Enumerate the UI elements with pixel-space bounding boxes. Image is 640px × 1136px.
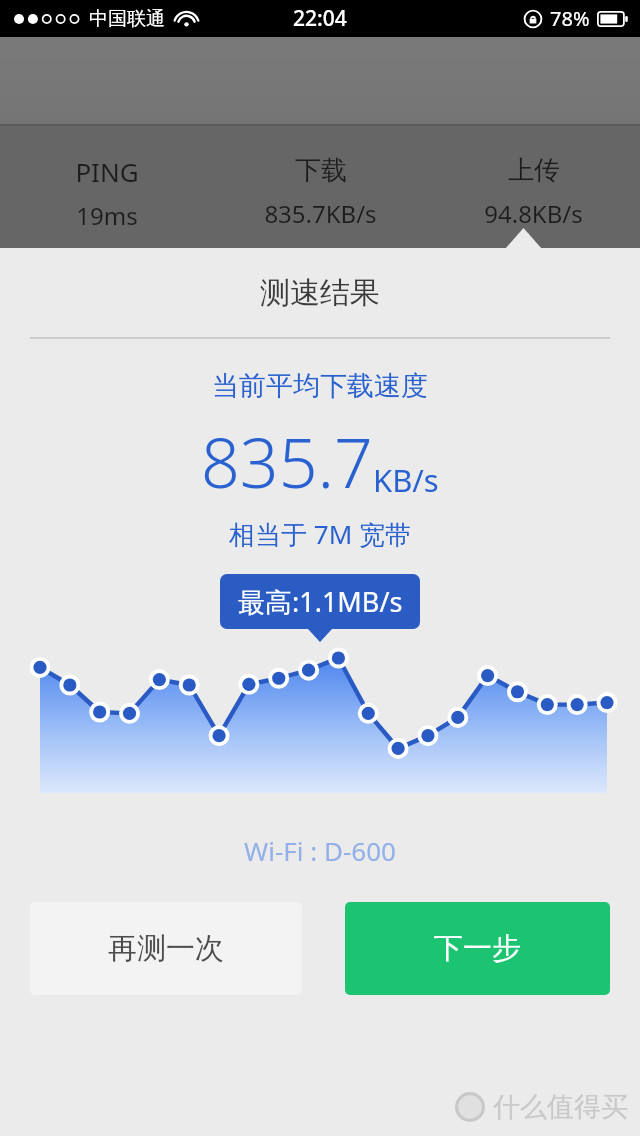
staticText: Wi-Fi : D-600: [0, 833, 640, 868]
staticText: 22:04: [293, 4, 347, 33]
button[interactable]: 下一步: [345, 902, 610, 995]
staticText: 上传: [508, 154, 560, 187]
staticText: 78%: [550, 5, 590, 32]
staticText: 19ms: [76, 199, 138, 232]
staticText: 相当于 7M 宽带: [0, 516, 640, 552]
staticText: 下一步: [434, 930, 521, 967]
staticText: 什么值得买: [493, 1090, 628, 1124]
staticText: KB/s: [373, 459, 439, 501]
staticText: 当前平均下载速度: [0, 369, 640, 403]
staticText: 最高:1.1MB/s: [238, 583, 403, 620]
staticText: 再测一次: [108, 930, 224, 967]
staticText: 94.8KB/s: [484, 197, 583, 230]
staticText: 中国联通: [89, 7, 165, 31]
staticText: 测速结果: [0, 274, 640, 312]
staticText: PING: [75, 154, 139, 189]
staticText: 835.7: [201, 415, 373, 508]
staticText: 835.7KB/s: [264, 197, 377, 230]
staticText: 下载: [295, 154, 347, 187]
button[interactable]: 再测一次: [30, 902, 302, 995]
